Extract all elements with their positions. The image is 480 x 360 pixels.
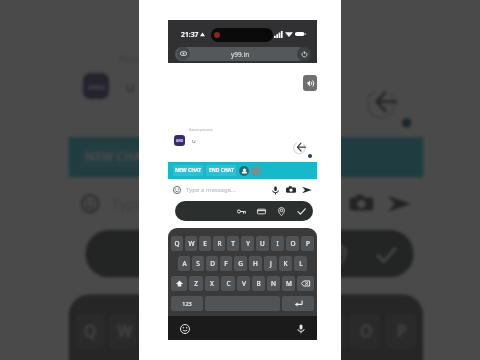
button[interactable]: H — [249, 256, 262, 271]
button[interactable]: Passwords — [228, 239, 257, 268]
button[interactable]: I — [271, 236, 284, 251]
staticText: 123 — [182, 300, 192, 307]
button[interactable]: Passwords — [235, 205, 247, 217]
button[interactable]: Profile — [238, 147, 261, 170]
button[interactable]: Emoji — [178, 322, 191, 335]
button[interactable]: C — [221, 276, 235, 291]
button[interactable]: Q — [76, 313, 104, 349]
button[interactable]: A — [178, 256, 190, 271]
button[interactable]: N — [267, 276, 280, 291]
staticText: Type a message... — [111, 194, 230, 213]
button[interactable]: Y — [241, 236, 254, 251]
button[interactable]: Voice message — [309, 189, 338, 218]
staticText: T — [219, 320, 228, 342]
button[interactable]: Payment methods — [276, 239, 304, 268]
staticText: L — [299, 259, 303, 268]
button[interactable]: K — [279, 256, 292, 271]
button[interactable]: M — [282, 276, 295, 291]
button[interactable]: Send — [385, 189, 414, 218]
button[interactable]: U — [256, 236, 269, 251]
button[interactable]: Addresses — [323, 239, 352, 268]
button[interactable]: B — [252, 276, 265, 291]
button[interactable]: Camera — [347, 189, 376, 218]
button[interactable]: Z — [189, 276, 203, 291]
button[interactable]: Confirm — [371, 239, 399, 268]
staticText: M — [286, 279, 292, 288]
staticText: R — [217, 239, 222, 248]
staticText: U — [260, 239, 265, 248]
button[interactable]: T — [209, 313, 238, 349]
button[interactable]: F — [220, 256, 232, 271]
button[interactable]: R — [213, 236, 225, 251]
button[interactable]: V — [237, 276, 250, 291]
button[interactable]: Enter — [282, 296, 314, 311]
button[interactable]: Profile — [239, 166, 249, 176]
button[interactable]: T — [227, 236, 239, 251]
staticText: G — [238, 259, 243, 268]
staticText: D — [210, 259, 215, 268]
staticText: END CHAT — [209, 167, 234, 174]
staticText: T — [231, 239, 235, 248]
button[interactable]: Camera — [285, 184, 297, 196]
button[interactable]: D — [206, 256, 218, 271]
button[interactable]: R — [176, 313, 204, 349]
button[interactable]: O — [349, 313, 380, 349]
staticText: P — [397, 320, 407, 342]
button[interactable]: END CHAT — [206, 165, 236, 176]
button[interactable]: Mute — [303, 75, 317, 91]
button[interactable]: y99.in — [175, 47, 305, 61]
button[interactable]: Confirm — [295, 205, 307, 217]
staticText: Q — [174, 239, 180, 248]
button[interactable]: NEW CHAT — [80, 144, 152, 170]
staticText: N — [271, 279, 276, 288]
button[interactable]: 123 — [171, 296, 203, 311]
staticText: W — [188, 239, 195, 248]
button[interactable]: X — [205, 276, 219, 291]
button[interactable]: E — [142, 313, 171, 349]
button[interactable]: More options — [251, 166, 261, 176]
button[interactable]: Voice input — [294, 322, 307, 335]
button[interactable]: Reload — [297, 47, 311, 61]
button[interactable]: Backspace — [297, 276, 314, 291]
staticText: END CHAT — [166, 149, 226, 166]
staticText: H — [253, 259, 258, 268]
staticText: B — [256, 279, 261, 288]
button[interactable]: J — [264, 256, 277, 271]
button[interactable]: Addresses — [275, 205, 287, 217]
button[interactable]: G — [234, 256, 247, 271]
button[interactable]: END CHAT — [159, 144, 230, 170]
staticText: NEW CHAT — [175, 167, 202, 174]
staticText: C — [226, 279, 231, 288]
button[interactable]: Y — [242, 313, 273, 349]
button[interactable]: W — [109, 313, 138, 349]
button[interactable]: NEW CHAT — [173, 165, 203, 176]
button[interactable]: Payment methods — [255, 205, 267, 217]
button[interactable]: I — [314, 313, 345, 349]
button[interactable]: Page info — [177, 47, 190, 60]
staticText: A — [182, 259, 187, 268]
button[interactable]: Voice message — [269, 184, 281, 196]
staticText: ANO — [88, 82, 107, 92]
staticText: S — [196, 259, 200, 268]
button[interactable]: More options — [266, 147, 290, 170]
button[interactable]: U — [278, 313, 309, 349]
staticText: 21:37 — [181, 30, 199, 38]
staticText: X — [210, 279, 214, 288]
button[interactable]: Send — [301, 184, 313, 196]
button[interactable]: W — [185, 236, 197, 251]
staticText: K — [283, 259, 288, 268]
button[interactable]: E — [199, 236, 211, 251]
staticText: u — [192, 137, 196, 145]
staticText: I — [276, 239, 279, 248]
staticText: O — [359, 320, 373, 342]
button[interactable]: O — [286, 236, 299, 251]
button[interactable]: Shift — [171, 276, 187, 291]
button[interactable]: P — [385, 313, 416, 349]
button[interactable]: L — [294, 256, 307, 271]
button[interactable]: S — [192, 256, 204, 271]
button[interactable]: Q — [171, 236, 183, 251]
button[interactable]: P — [301, 236, 314, 251]
staticText: Z — [194, 279, 198, 288]
